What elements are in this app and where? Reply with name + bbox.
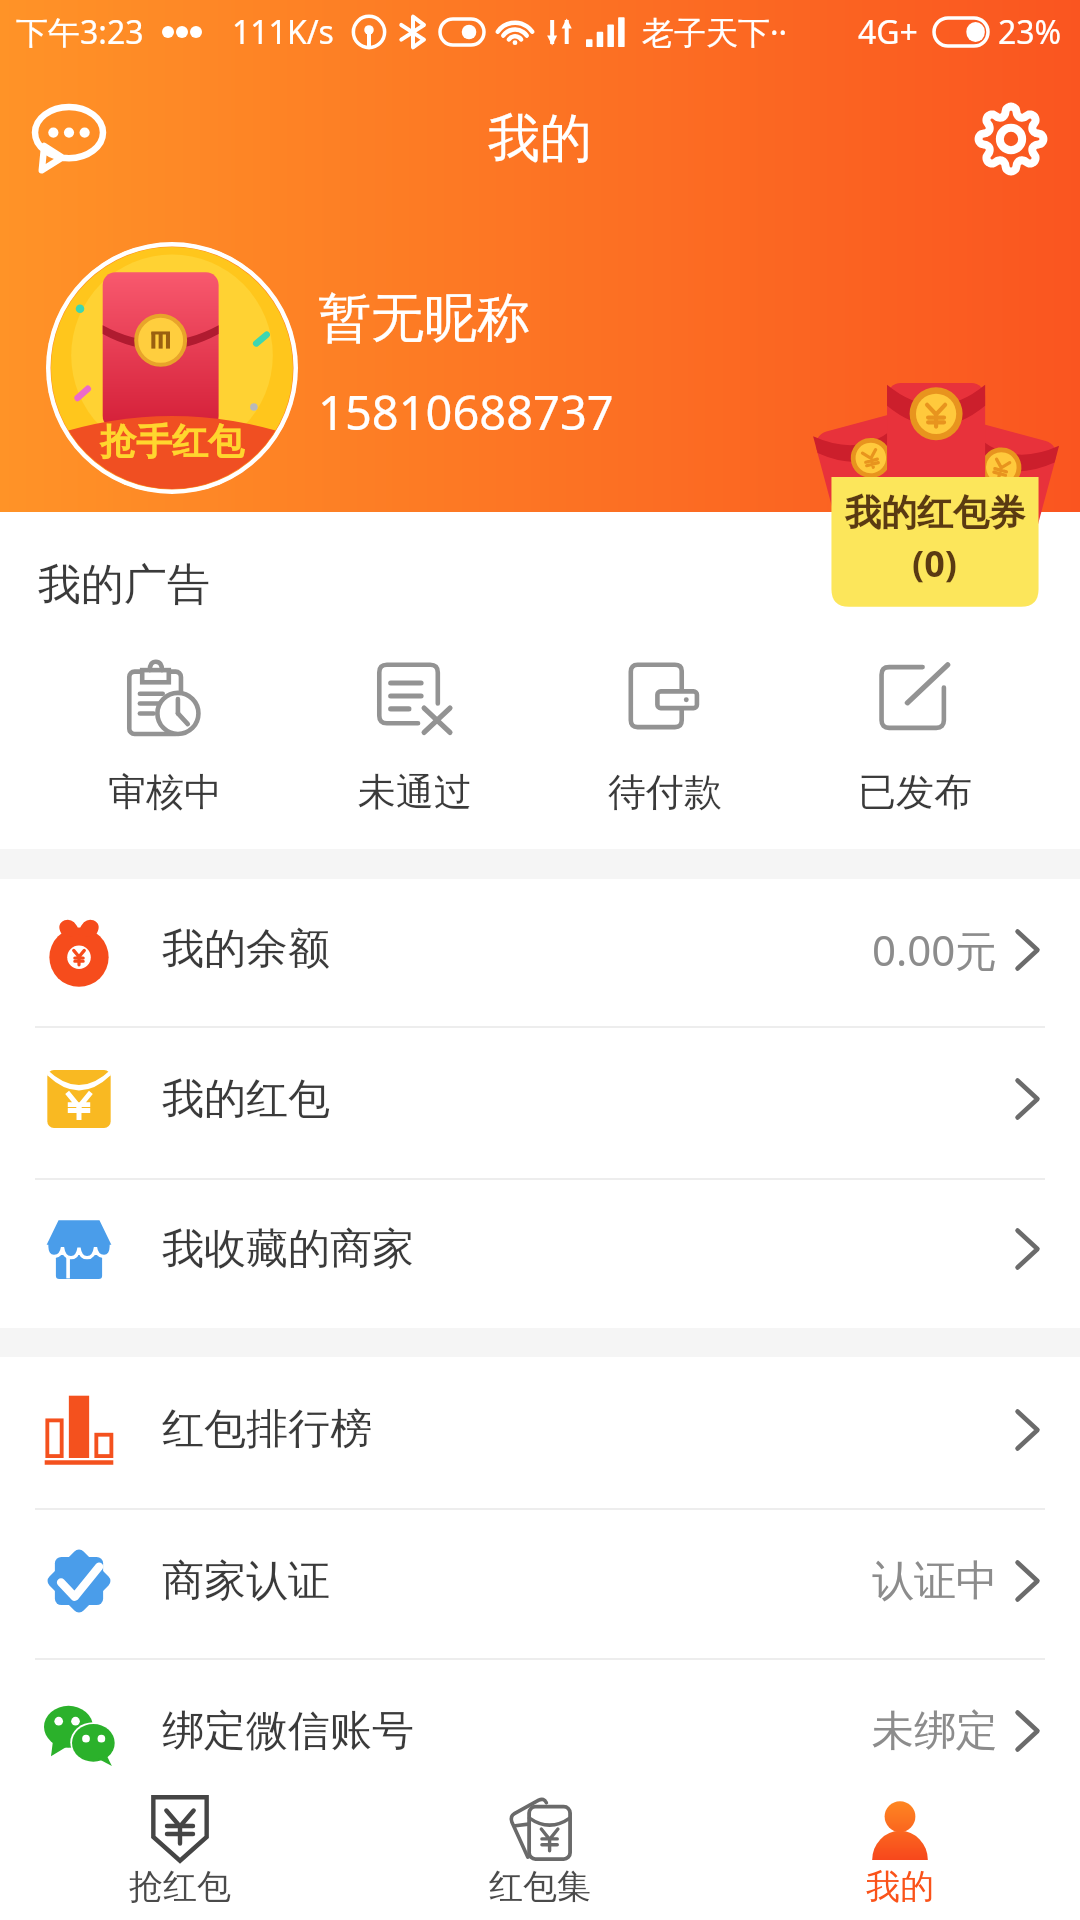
- staticText: 未通过: [358, 768, 472, 816]
- staticText: 111K/s: [232, 10, 334, 54]
- staticText: 红包集: [489, 1865, 591, 1908]
- staticText: 我的红包券: [845, 490, 1025, 535]
- staticText: 抢手红包: [100, 419, 244, 464]
- staticText: 23%: [998, 10, 1062, 54]
- button[interactable]: 未通过: [290, 658, 540, 816]
- staticText: 抢红包: [129, 1865, 231, 1908]
- staticText: 15810688737: [318, 380, 614, 444]
- button[interactable]: 红包集: [360, 1776, 720, 1920]
- button[interactable]: 待付款: [540, 658, 790, 816]
- staticText: 已发布: [858, 768, 972, 816]
- staticText: 审核中: [108, 768, 222, 816]
- button[interactable]: 抢红包: [0, 1776, 360, 1920]
- staticText: 老子天下··: [642, 10, 788, 54]
- button[interactable]: 已发布: [790, 658, 1040, 816]
- button[interactable]: 商家认证: [0, 1510, 1080, 1658]
- button[interactable]: 我的余额: [0, 879, 1080, 1026]
- staticText: 4G+: [858, 10, 918, 54]
- button[interactable]: Settings: [956, 84, 1066, 194]
- staticText: 待付款: [608, 768, 722, 816]
- button[interactable]: 我的: [720, 1776, 1080, 1920]
- staticText: 绑定微信账号: [162, 1705, 414, 1758]
- button[interactable]: 绑定微信账号: [0, 1660, 1080, 1810]
- button[interactable]: 我的红包券: [826, 370, 1044, 608]
- staticText: 0.00元: [872, 921, 998, 978]
- staticText: 认证中: [872, 1555, 998, 1608]
- staticText: 我的广告: [38, 558, 210, 612]
- staticText: 下午3:23: [16, 10, 144, 54]
- button[interactable]: 审核中: [40, 658, 290, 816]
- staticText: 暂无昵称: [318, 285, 530, 352]
- button[interactable]: 我收藏的商家: [0, 1180, 1080, 1328]
- button[interactable]: 我的红包: [0, 1028, 1080, 1178]
- button[interactable]: Avatar: [46, 242, 298, 494]
- staticText: 红包排行榜: [162, 1403, 372, 1456]
- staticText: 未绑定: [872, 1705, 998, 1758]
- staticText: 我收藏的商家: [162, 1223, 414, 1276]
- button[interactable]: Messages: [14, 84, 124, 194]
- staticText: 我的红包: [162, 1073, 330, 1126]
- button[interactable]: 红包排行榜: [0, 1357, 1080, 1508]
- staticText: 我的: [866, 1865, 934, 1908]
- staticText: 我的: [488, 106, 592, 172]
- staticText: 我的余额: [162, 923, 330, 976]
- staticText: 商家认证: [162, 1555, 330, 1608]
- staticText: (0): [912, 539, 958, 588]
